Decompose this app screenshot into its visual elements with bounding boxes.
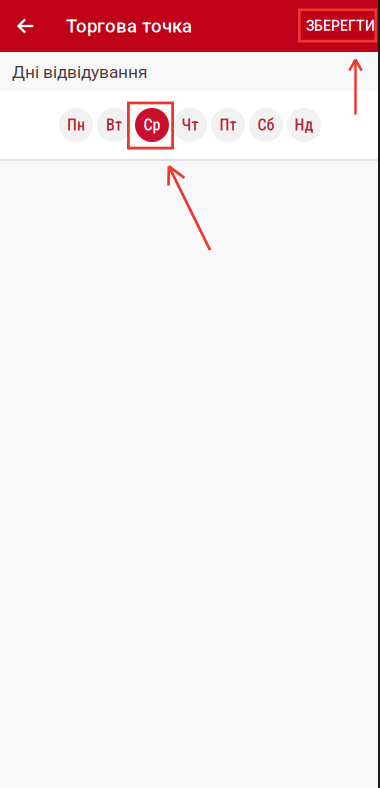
staticText: Сб xyxy=(257,116,274,134)
staticText: ЗБЕРЕГТИ xyxy=(306,18,375,34)
button[interactable]: Сб xyxy=(249,108,283,142)
button[interactable]: Пн xyxy=(59,108,93,142)
button[interactable]: ЗБЕРЕГТИ xyxy=(294,8,380,44)
staticText: Чт xyxy=(181,116,198,134)
button[interactable]: Чт xyxy=(173,108,207,142)
staticText: Дні відвідування xyxy=(12,62,148,82)
button[interactable]: Вт xyxy=(97,108,131,142)
staticText: Пн xyxy=(67,116,85,134)
button[interactable]: Нд xyxy=(287,108,321,142)
staticText: Ср xyxy=(143,116,160,134)
staticText: Пт xyxy=(219,116,236,134)
staticText: Нд xyxy=(294,116,313,134)
button[interactable]: Ср xyxy=(135,108,169,142)
button[interactable]: Back xyxy=(7,0,43,52)
button[interactable]: Пт xyxy=(211,108,245,142)
staticText: Торгова точка xyxy=(66,15,192,37)
staticText: Вт xyxy=(106,116,122,134)
